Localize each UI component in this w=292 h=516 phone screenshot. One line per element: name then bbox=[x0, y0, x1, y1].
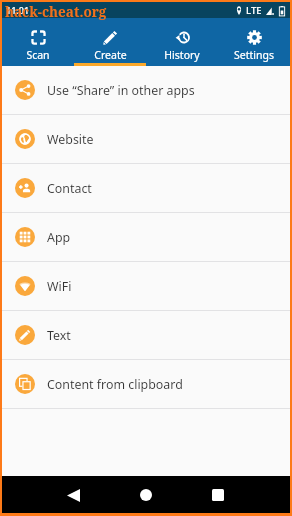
staticText: App bbox=[47, 229, 71, 246]
staticText: Scan bbox=[26, 48, 50, 62]
staticText: hack-cheat.org bbox=[5, 3, 107, 21]
button[interactable]: Back bbox=[55, 477, 91, 513]
button[interactable]: Settings bbox=[218, 18, 290, 66]
staticText: LTE bbox=[246, 4, 262, 17]
button[interactable]: WiFi bbox=[2, 262, 290, 310]
button[interactable]: Website bbox=[2, 115, 290, 163]
staticText: Contact bbox=[47, 180, 92, 197]
button[interactable]: Recents bbox=[200, 477, 236, 513]
staticText: History bbox=[164, 48, 200, 62]
staticText: Content from clipboard bbox=[47, 376, 183, 393]
staticText: Use “Share” in other apps bbox=[47, 82, 195, 99]
button[interactable]: Home bbox=[128, 477, 164, 513]
staticText: WiFi bbox=[47, 278, 72, 295]
button[interactable]: History bbox=[146, 18, 218, 66]
button[interactable]: Text bbox=[2, 311, 290, 359]
button[interactable]: Contact bbox=[2, 164, 290, 212]
button[interactable]: Use “Share” in other apps bbox=[2, 66, 290, 114]
staticText: Create bbox=[94, 48, 127, 62]
staticText: Website bbox=[47, 131, 94, 148]
button[interactable]: App bbox=[2, 213, 290, 261]
staticText: Text bbox=[47, 327, 71, 344]
staticText: 11:01 bbox=[6, 4, 30, 16]
button[interactable]: Content from clipboard bbox=[2, 360, 290, 408]
staticText: Settings bbox=[234, 48, 274, 62]
button[interactable]: Scan bbox=[2, 18, 74, 66]
button[interactable]: Create bbox=[74, 18, 146, 66]
